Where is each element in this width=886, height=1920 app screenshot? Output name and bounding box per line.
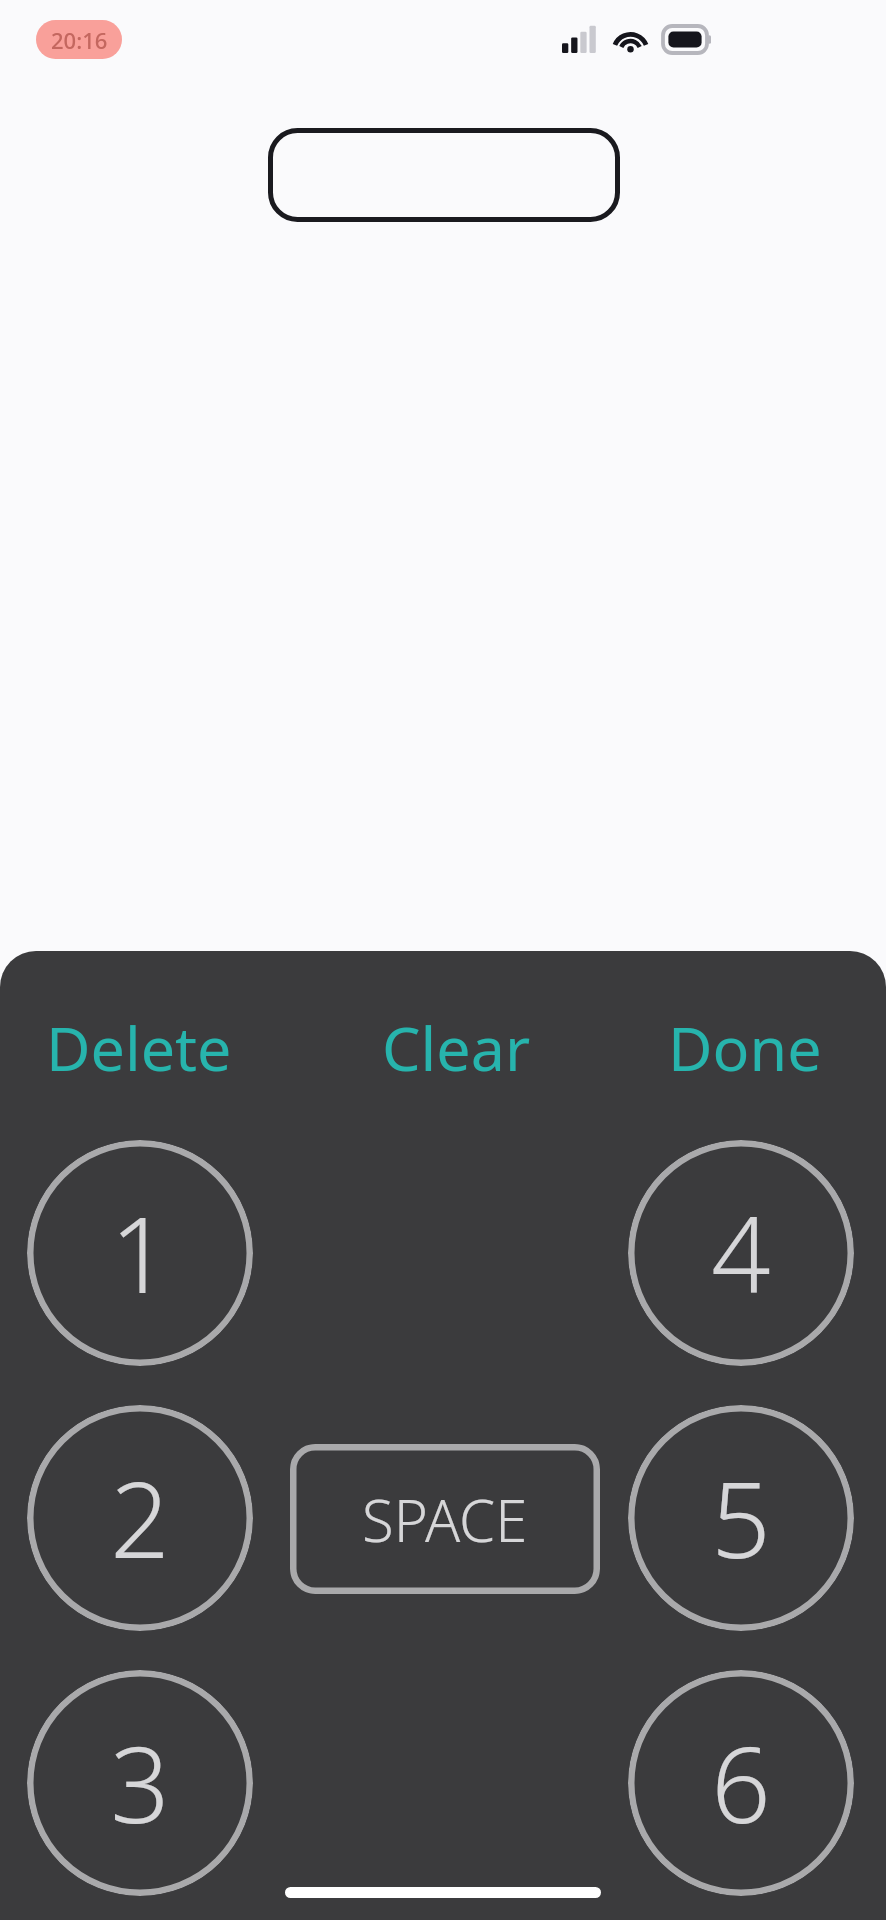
staticText: Delete [46, 1006, 232, 1088]
button[interactable]: 3 [27, 1670, 253, 1896]
staticText: Clear [382, 1006, 531, 1088]
staticText: 2 [110, 1447, 170, 1589]
button[interactable]: Delete [46, 1006, 232, 1088]
button[interactable]: 20:16 [36, 20, 122, 59]
button[interactable]: SPACE [290, 1444, 600, 1594]
staticText: 5 [711, 1447, 771, 1589]
staticText: 3 [110, 1712, 170, 1854]
button[interactable]: 5 [628, 1405, 854, 1631]
button[interactable]: 4 [628, 1140, 854, 1366]
button[interactable]: Clear [382, 1006, 531, 1088]
staticText: 4 [711, 1182, 771, 1324]
staticText: SPACE [362, 1480, 528, 1559]
staticText: Done [668, 1006, 822, 1088]
button[interactable]: 6 [628, 1670, 854, 1896]
staticText: 6 [711, 1712, 771, 1854]
staticText: 1 [110, 1182, 170, 1324]
button[interactable]: 2 [27, 1405, 253, 1631]
staticText: 20:16 [51, 25, 108, 55]
button[interactable]: Text input field [268, 128, 620, 222]
button[interactable]: 1 [27, 1140, 253, 1366]
button[interactable]: Done [668, 1006, 822, 1088]
